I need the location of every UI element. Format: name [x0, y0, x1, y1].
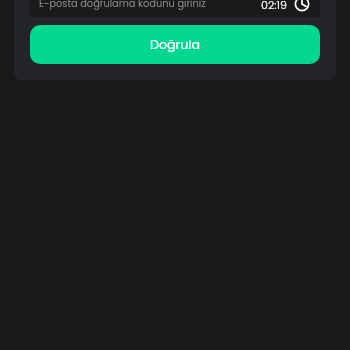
- staticText: E-posta doğrulama kodunu giriniz: [39, 0, 206, 11]
- button[interactable]: Doğrula: [30, 25, 320, 64]
- staticText: 02:19: [261, 0, 288, 12]
- staticText: Doğrula: [150, 36, 200, 54]
- button[interactable]: E-posta doğrulama kodunu giriniz: [30, 0, 320, 17]
- other: Countdown timer: [294, 0, 310, 12]
